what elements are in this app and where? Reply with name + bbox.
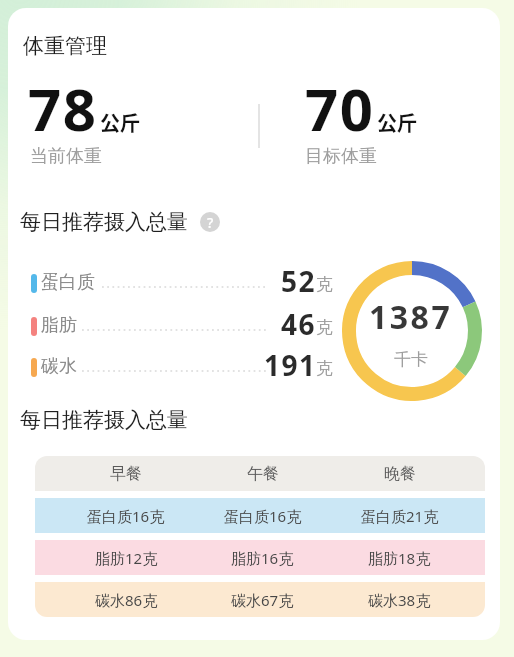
staticText: 午餐 bbox=[247, 464, 279, 484]
staticText: 克 bbox=[316, 274, 333, 295]
staticText: 蛋白质 bbox=[41, 271, 95, 294]
staticText: 每日推荐摄入总量 bbox=[20, 407, 188, 433]
staticText: 千卡 bbox=[394, 349, 428, 370]
staticText: 早餐 bbox=[110, 464, 142, 484]
staticText: 碳水67克 bbox=[231, 590, 294, 610]
button[interactable]: 碳水86克 bbox=[58, 582, 468, 617]
button[interactable]: ? bbox=[200, 212, 220, 232]
staticText: 46 bbox=[281, 305, 317, 343]
staticText: 公斤 bbox=[377, 108, 417, 137]
button[interactable]: 70 bbox=[305, 69, 417, 148]
staticText: 克 bbox=[316, 317, 333, 338]
staticText: 蛋白质16克 bbox=[224, 506, 302, 526]
staticText: 晚餐 bbox=[384, 464, 416, 484]
staticText: ? bbox=[207, 213, 214, 232]
staticText: 每日推荐摄入总量 bbox=[20, 209, 188, 235]
staticText: 目标体重 bbox=[305, 145, 377, 168]
staticText: 蛋白质21克 bbox=[361, 506, 439, 526]
staticText: 脂肪16克 bbox=[231, 548, 294, 568]
staticText: 克 bbox=[316, 358, 333, 379]
staticText: 52 bbox=[281, 262, 317, 300]
staticText: 体重管理 bbox=[23, 33, 107, 59]
staticText: 1387 bbox=[369, 295, 453, 335]
staticText: 78 bbox=[28, 69, 98, 148]
button[interactable]: 早餐 bbox=[58, 456, 468, 491]
staticText: 脂肪 bbox=[41, 314, 77, 337]
staticText: 公斤 bbox=[100, 108, 140, 137]
staticText: 当前体重 bbox=[30, 145, 102, 168]
staticText: 脂肪12克 bbox=[95, 548, 158, 568]
button[interactable]: 蛋白质16克 bbox=[58, 498, 468, 533]
button[interactable]: 脂肪12克 bbox=[58, 540, 468, 575]
staticText: 碳水 bbox=[41, 355, 77, 378]
staticText: 70 bbox=[305, 69, 375, 148]
staticText: 脂肪18克 bbox=[368, 548, 431, 568]
staticText: 蛋白质16克 bbox=[87, 506, 165, 526]
staticText: 191 bbox=[264, 346, 317, 384]
button[interactable]: 78 bbox=[28, 69, 140, 148]
staticText: 碳水38克 bbox=[368, 590, 431, 610]
staticText: 碳水86克 bbox=[95, 590, 158, 610]
